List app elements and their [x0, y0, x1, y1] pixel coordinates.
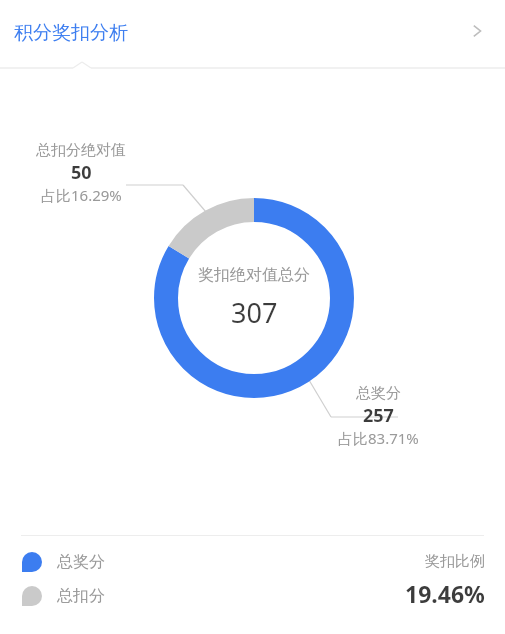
staticText: 50	[71, 160, 92, 185]
staticText: 占比83.71%	[338, 428, 419, 448]
staticText: 总奖分	[57, 552, 105, 572]
staticText: 奖扣绝对值总分	[198, 265, 310, 285]
staticText: 总扣分	[57, 586, 105, 606]
other: More	[469, 23, 485, 39]
staticText: 奖扣比例	[425, 552, 485, 571]
staticText: 积分奖扣分析	[14, 21, 128, 45]
staticText: 总奖分	[356, 384, 401, 403]
staticText: 总扣分绝对值	[36, 141, 126, 160]
staticText: 307	[231, 294, 278, 331]
button[interactable]: 总扣分	[22, 586, 105, 606]
staticText: 占比16.29%	[41, 185, 122, 205]
button[interactable]: 总奖分	[22, 552, 105, 572]
button[interactable]: 积分奖扣分析	[0, 0, 505, 61]
staticText: 257	[363, 403, 394, 428]
staticText: 19.46%	[405, 578, 485, 609]
